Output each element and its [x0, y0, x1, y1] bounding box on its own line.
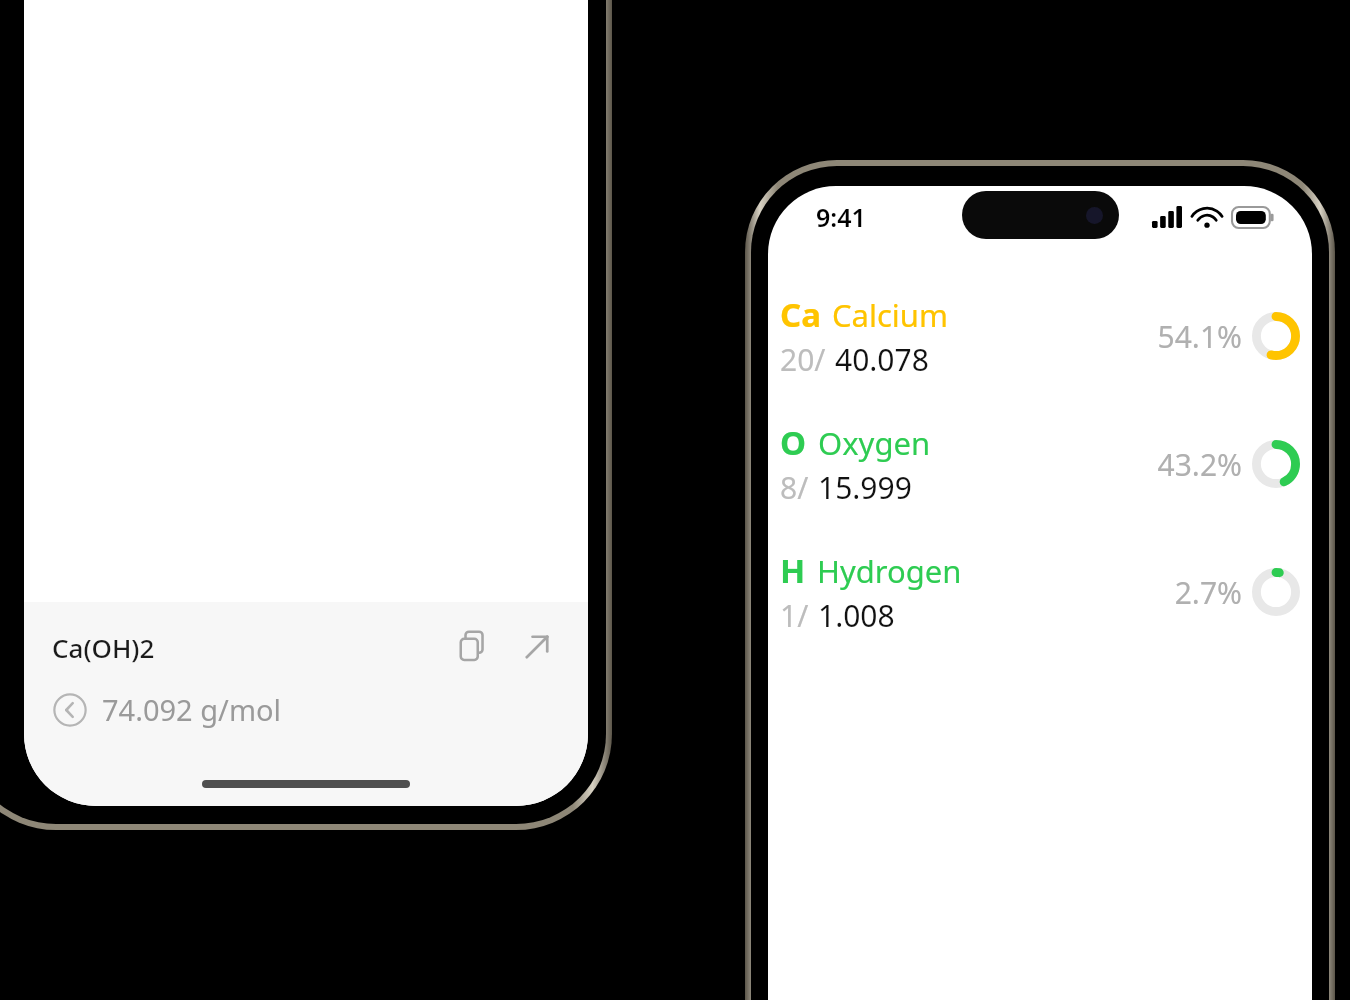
staticText: Hydrogen [817, 550, 962, 592]
button[interactable]: Open [514, 624, 560, 670]
staticText: O [780, 420, 807, 465]
staticText: Ca(OH)2 [52, 630, 155, 665]
staticText: 2.7% [1174, 572, 1242, 613]
button[interactable]: O [768, 420, 1312, 508]
button[interactable]: Copy [450, 624, 496, 670]
staticText: Oxygen [818, 422, 931, 464]
button[interactable]: 74.092 g/mol [52, 690, 588, 729]
button[interactable]: H [768, 548, 1312, 636]
staticText: 9:41 [816, 200, 866, 234]
staticText: 40.078 [835, 339, 929, 380]
staticText: 15.999 [818, 467, 912, 508]
staticText: Calcium [832, 294, 949, 336]
staticText: 8/ [780, 467, 809, 508]
button[interactable]: Ca [768, 292, 1312, 380]
staticText: 74.092 g/mol [102, 690, 282, 729]
staticText: H [780, 548, 806, 593]
staticText: 54.1% [1157, 316, 1242, 357]
staticText: 1.008 [818, 595, 895, 636]
staticText: Ca [780, 292, 821, 337]
staticText: 43.2% [1157, 444, 1242, 485]
staticText: 20/ [780, 339, 826, 380]
staticText: 1/ [780, 595, 809, 636]
